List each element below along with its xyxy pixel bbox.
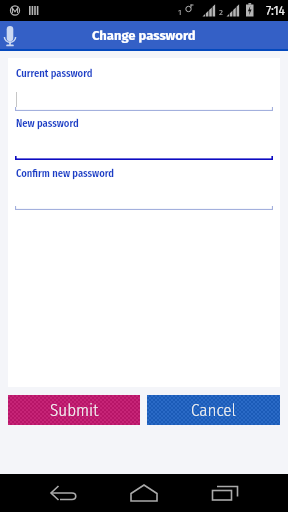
- button[interactable]: Submit: [8, 395, 140, 425]
- button[interactable]: Recent apps: [201, 474, 249, 512]
- staticText: 7:14: [266, 4, 286, 18]
- staticText: Change password: [92, 28, 196, 44]
- staticText: 1: [178, 8, 182, 18]
- staticText: Submit: [50, 400, 99, 420]
- staticText: Cancel: [191, 400, 236, 420]
- staticText: Current password: [16, 67, 93, 80]
- button[interactable]: Home: [120, 474, 168, 512]
- staticText: Confirm new password: [16, 167, 114, 180]
- staticText: New password: [16, 117, 79, 130]
- staticText: 2: [219, 8, 223, 18]
- button[interactable]: Back: [40, 474, 88, 512]
- button[interactable]: Cancel: [147, 395, 280, 425]
- button[interactable]: Voice input: [0, 22, 24, 50]
